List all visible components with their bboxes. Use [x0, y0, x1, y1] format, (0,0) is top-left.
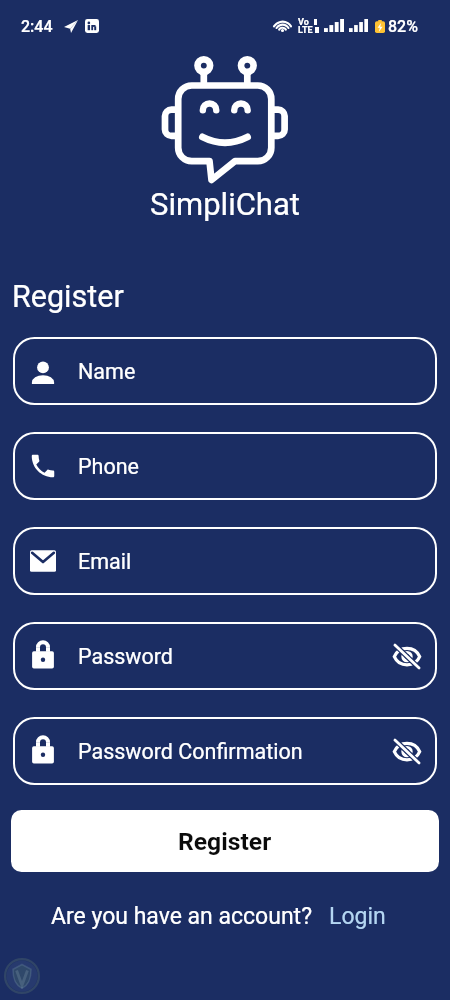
button[interactable]: Login: [329, 903, 386, 930]
button[interactable]: Toggle password visibility: [393, 644, 421, 669]
staticText: Login: [329, 903, 386, 930]
staticText: Password Confirmation: [78, 739, 303, 764]
staticText: Email: [78, 549, 132, 574]
staticText: Register: [178, 827, 272, 856]
button[interactable]: Password: [13, 622, 437, 690]
button[interactable]: Register: [11, 810, 439, 872]
button[interactable]: Password Confirmation: [13, 717, 437, 785]
staticText: Register: [12, 279, 124, 315]
button[interactable]: Phone: [13, 432, 437, 500]
staticText: 82%: [388, 17, 418, 36]
staticText: Vo: [298, 17, 309, 28]
button[interactable]: Name: [13, 337, 437, 405]
staticText: Phone: [78, 454, 139, 479]
staticText: SimpliChat: [0, 186, 450, 222]
staticText: LTE: [298, 25, 313, 36]
staticText: Name: [78, 359, 136, 384]
button[interactable]: Email: [13, 527, 437, 595]
button[interactable]: Toggle password visibility: [393, 739, 421, 764]
staticText: 2:44: [21, 17, 53, 36]
staticText: Password: [78, 644, 173, 669]
staticText: Are you have an account?: [51, 903, 313, 930]
